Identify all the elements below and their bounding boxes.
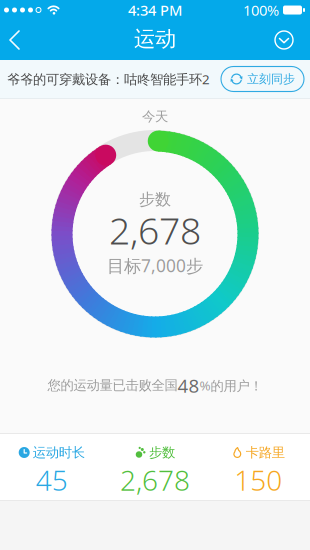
staticText: 100%: [243, 0, 279, 20]
button[interactable]: 立刻同步: [221, 66, 310, 91]
staticText: 45: [36, 461, 68, 499]
staticText: 步数: [149, 444, 175, 461]
staticText: 运动时长: [33, 444, 85, 461]
staticText: %的用户！: [199, 376, 262, 394]
staticText: 步数: [139, 190, 171, 209]
staticText: 目标7,000步: [107, 254, 203, 277]
staticText: 您的运动量已击败全国: [47, 377, 177, 394]
staticText: 爷爷的可穿戴设备：咕咚智能手环2: [7, 70, 210, 88]
staticText: 立刻同步: [247, 72, 295, 86]
staticText: 运动: [134, 26, 176, 52]
staticText: 2,678: [120, 461, 190, 499]
staticText: 150: [234, 461, 282, 499]
button[interactable]: Back: [0, 22, 21, 58]
staticText: 2,678: [109, 205, 201, 255]
staticText: 4:34 PM: [128, 0, 182, 20]
staticText: 卡路里: [246, 444, 285, 461]
staticText: 48: [177, 373, 199, 398]
button[interactable]: Expand: [274, 22, 310, 58]
staticText: 今天: [142, 108, 168, 125]
